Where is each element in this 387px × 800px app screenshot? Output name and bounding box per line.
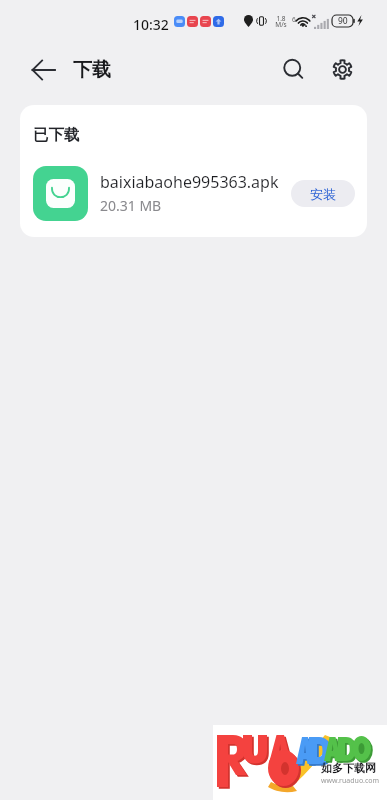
staticText: 90	[338, 15, 348, 27]
staticText: 安装	[310, 186, 336, 202]
staticText: 20.31 MB	[100, 196, 162, 215]
button[interactable]: baixiabaohe995363.apk	[20, 157, 367, 229]
button[interactable]: 安装	[291, 180, 355, 207]
staticText: www.ruaduo.com	[321, 776, 380, 786]
staticText: 已下载	[33, 125, 80, 145]
button[interactable]: Search	[273, 49, 315, 91]
staticText: 10:32	[133, 15, 169, 34]
staticText: 1.8 M/s	[275, 14, 287, 29]
button[interactable]: Back	[22, 49, 64, 91]
staticText: baixiabaohe995363.apk	[100, 171, 279, 193]
staticText: 下载	[73, 58, 111, 82]
staticText: 6	[292, 15, 296, 24]
staticText: 如多下载网	[321, 761, 376, 775]
button[interactable]: Settings	[321, 49, 363, 91]
